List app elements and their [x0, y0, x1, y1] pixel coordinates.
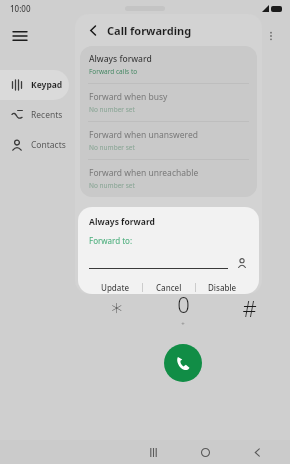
staticText: #	[242, 293, 257, 323]
staticText: +	[181, 320, 185, 328]
button[interactable]: Forward when unanswered	[80, 121, 257, 159]
staticText: Forward calls to	[89, 67, 138, 76]
button[interactable]: Recents	[140, 440, 166, 464]
button[interactable]: 1	[83, 112, 150, 168]
staticText: Always forward	[89, 53, 152, 65]
button[interactable]: 7	[83, 224, 150, 280]
button[interactable]: Search	[222, 19, 256, 53]
button[interactable]: Recents	[0, 100, 69, 130]
button[interactable]: Forward when busy	[80, 83, 257, 121]
button[interactable]: 4	[83, 168, 150, 224]
button[interactable]: 0	[150, 280, 216, 336]
staticText: No number set	[89, 181, 135, 190]
staticText: 0	[177, 289, 190, 319]
button[interactable]: Keypad	[0, 70, 69, 100]
button[interactable]: 5	[150, 168, 216, 224]
button[interactable]: Back	[244, 440, 270, 464]
button[interactable]: Menu	[0, 16, 40, 56]
staticText: 2	[177, 121, 190, 151]
button[interactable]: 8	[150, 224, 216, 280]
button[interactable]: Update	[89, 281, 142, 294]
staticText: MNO	[242, 208, 257, 216]
staticText: 10:00	[10, 3, 31, 14]
staticText: No number set	[89, 143, 135, 152]
staticText: 4	[110, 177, 123, 207]
staticText: WXYZ	[241, 264, 258, 272]
button[interactable]: Contacts	[0, 130, 69, 160]
button[interactable]: Back	[83, 20, 103, 40]
staticText: Recents	[31, 109, 63, 121]
button[interactable]: More options	[256, 21, 286, 51]
staticText: 1	[110, 125, 123, 155]
staticText: Keypad	[31, 79, 63, 91]
staticText: No number set	[89, 105, 135, 114]
staticText: Contacts	[31, 139, 66, 151]
button[interactable]: ∗	[83, 280, 150, 336]
button[interactable]: 2	[150, 112, 216, 168]
staticText: Forward when busy	[89, 91, 168, 103]
staticText: Always forward	[89, 216, 155, 228]
staticText: PQRS	[109, 264, 125, 272]
staticText: Forward when unanswered	[89, 129, 198, 141]
button[interactable]: Call	[164, 344, 202, 382]
button[interactable]: Forward when unreachable	[80, 159, 257, 197]
button[interactable]: Cancel	[143, 281, 195, 294]
staticText: Disable	[208, 282, 237, 293]
button[interactable]: Always forward	[80, 46, 257, 83]
staticText: Cancel	[156, 282, 182, 293]
staticText: Forward when unreachable	[89, 167, 199, 179]
button[interactable]: Pick contact	[236, 257, 248, 269]
staticText: 9	[243, 233, 256, 263]
button[interactable]: 9	[216, 224, 282, 280]
staticText: ABC	[177, 152, 189, 160]
staticText: ∗	[110, 295, 124, 321]
button[interactable]: 6	[216, 168, 282, 224]
button[interactable]: #	[216, 280, 282, 336]
staticText: Update	[101, 282, 130, 293]
staticText: Call forwarding	[107, 23, 192, 38]
staticText: 6	[243, 177, 256, 207]
staticText: TUV	[177, 264, 189, 272]
button[interactable]: 3	[216, 112, 282, 168]
staticText: Forward to:	[89, 235, 133, 246]
button[interactable]: Home	[192, 440, 218, 464]
button[interactable]: Disable	[196, 281, 248, 294]
staticText: 7	[110, 233, 123, 263]
staticText: 5	[177, 177, 190, 207]
